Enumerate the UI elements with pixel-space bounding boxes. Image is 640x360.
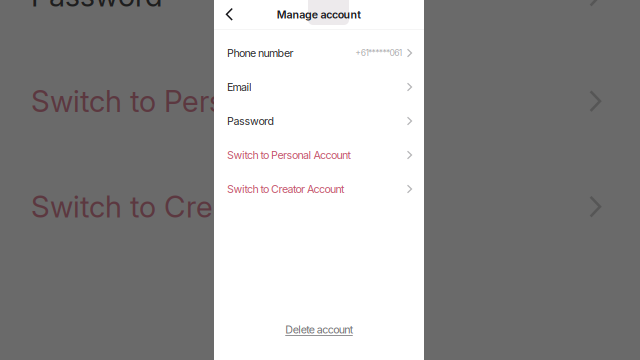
staticText: Password (227, 114, 274, 127)
staticText: Switch to Creator Account (31, 189, 385, 225)
button[interactable]: Phone number (214, 36, 424, 70)
button[interactable]: Password (214, 104, 424, 138)
staticText: Manage account (277, 8, 361, 21)
staticText: Switch to Personal Account (227, 148, 350, 161)
staticText: Switch to Personal Account (31, 83, 401, 119)
staticText: Email (227, 80, 252, 93)
button[interactable]: Email (214, 70, 424, 104)
staticText: Switch to Creator Account (227, 182, 344, 195)
staticText: Password (31, 0, 162, 14)
button[interactable]: Switch to Personal Account (214, 138, 424, 172)
staticText: Phone number (227, 46, 293, 59)
staticText: +61******061 (355, 48, 402, 58)
button[interactable]: Back (214, 0, 245, 29)
staticText: Delete account (285, 323, 353, 336)
button[interactable]: Delete account (277, 319, 361, 340)
button[interactable]: Switch to Creator Account (214, 172, 424, 206)
